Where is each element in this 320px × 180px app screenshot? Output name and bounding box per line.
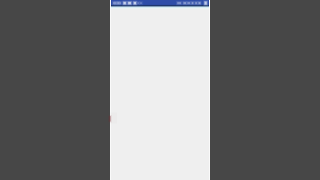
other: Status bar: [111, 0, 209, 10]
